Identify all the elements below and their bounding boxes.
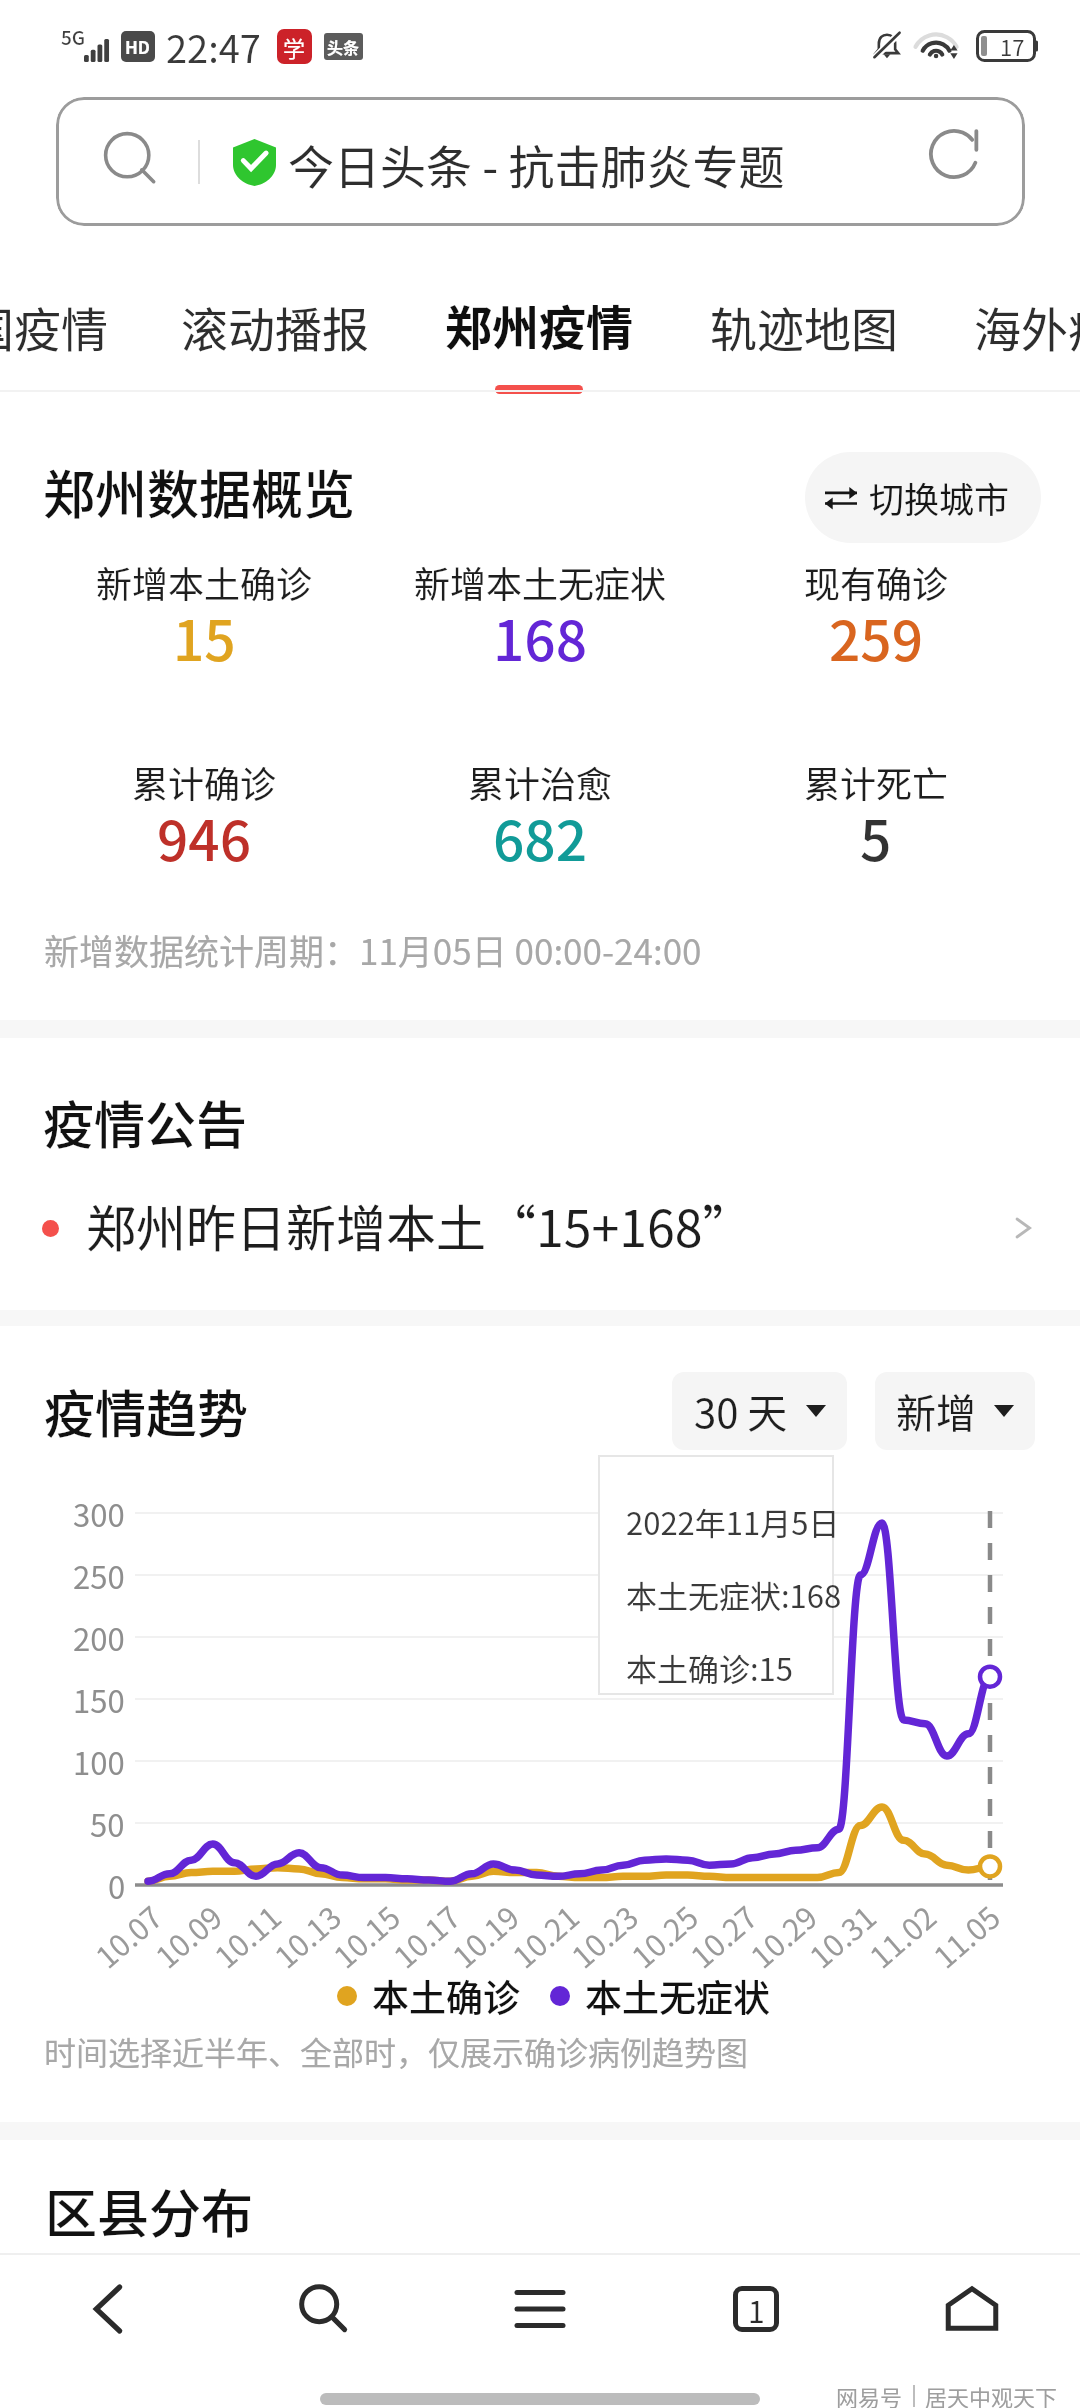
staticText: 0 (108, 1863, 126, 1908)
staticText: 22:47 (166, 19, 261, 74)
staticText: 150 (73, 1677, 125, 1722)
staticText: 累计死亡 (804, 756, 949, 808)
staticText: 新增 (896, 1382, 976, 1440)
staticText: 本土确诊 (372, 1969, 520, 2023)
staticText: 区县分布 (45, 2173, 254, 2248)
staticText: 259 (829, 597, 924, 677)
staticText: 郑州昨日新增本土“15+168” (86, 1189, 753, 1261)
button[interactable]: Home (864, 2255, 1080, 2363)
button[interactable]: 郑州昨日新增本土“15+168” (0, 1180, 1080, 1276)
staticText: 10.25 (621, 1895, 706, 1976)
staticText: 5 (860, 797, 892, 877)
staticText: 10.21 (502, 1895, 587, 1976)
staticText: 今日头条 - 抗击肺炎专题 (288, 131, 785, 198)
button[interactable]: 30 天 (672, 1372, 847, 1450)
staticText: 时间选择近半年、全部时，仅展示确诊病例趋势图 (44, 2028, 749, 2074)
staticText: 10.17 (383, 1895, 468, 1976)
staticText: 300 (73, 1491, 125, 1536)
staticText: 11.05 (923, 1895, 1008, 1976)
staticText: 30 天 (694, 1382, 788, 1440)
staticText: 头条 (327, 35, 360, 58)
staticText: 10.27 (680, 1895, 765, 1976)
staticText: 切换城市 (869, 472, 1010, 523)
staticText: 5G (61, 23, 86, 51)
button[interactable]: Menu (432, 2255, 648, 2363)
staticText: 10.19 (442, 1895, 527, 1976)
button[interactable]: 轨迹地图 (710, 292, 898, 360)
button[interactable]: 中国疫情 (0, 292, 108, 360)
staticText: 10.13 (264, 1895, 349, 1976)
staticText: 疫情公告 (43, 1085, 248, 1159)
staticText: 17 (1000, 30, 1025, 62)
staticText: 累计治愈 (468, 756, 613, 808)
staticText: 本土无症状 (585, 1969, 770, 2023)
staticText: 15 (173, 597, 236, 677)
staticText: 10.09 (145, 1895, 230, 1976)
button[interactable]: 郑州疫情 (445, 290, 633, 394)
button[interactable]: Back (0, 2255, 216, 2363)
button[interactable]: 滚动播报 (181, 292, 369, 360)
staticText: 250 (73, 1553, 125, 1598)
staticText: 10.07 (85, 1895, 170, 1976)
staticText: 网易号 (836, 2380, 903, 2408)
staticText: 200 (73, 1615, 125, 1660)
staticText: 10.11 (204, 1895, 289, 1976)
staticText: 新增本土确诊 (96, 556, 313, 608)
staticText: 50 (90, 1801, 125, 1846)
staticText: 682 (493, 797, 588, 877)
staticText: 2022年11月5日 (626, 1499, 840, 1544)
staticText: 10.15 (323, 1895, 408, 1976)
staticText: 郑州数据概览 (43, 454, 356, 529)
staticText: 本土无症状:168 (626, 1572, 842, 1617)
staticText: 郑州疫情 (445, 290, 633, 358)
staticText: 新增数据统计周期：11月05日 00:00-24:00 (44, 924, 702, 975)
other: Refresh (928, 128, 980, 180)
staticText: HD (125, 34, 151, 59)
staticText: 疫情趋势 (44, 1374, 249, 1448)
staticText: 11.02 (859, 1895, 944, 1976)
staticText: 168 (493, 597, 588, 677)
other: Search (104, 132, 158, 186)
button[interactable]: 新增 (875, 1372, 1035, 1450)
button[interactable]: Tabs (648, 2255, 864, 2363)
staticText: 新增本土无症状 (414, 556, 667, 608)
staticText: 10.23 (561, 1895, 646, 1976)
staticText: 946 (157, 797, 252, 877)
staticText: 本土确诊:15 (626, 1645, 794, 1690)
staticText: 100 (73, 1739, 125, 1784)
button[interactable]: 切换城市 (805, 452, 1041, 543)
button[interactable]: Search (216, 2255, 432, 2363)
staticText: 现有确诊 (804, 556, 949, 608)
button[interactable]: 海外疫情 (974, 292, 1080, 360)
staticText: 累计确诊 (132, 756, 277, 808)
button[interactable] (56, 97, 1025, 226)
staticText: 居天中观天下 (925, 2380, 1058, 2408)
staticText: 10.31 (799, 1895, 884, 1976)
staticText: 学 (283, 31, 306, 63)
staticText: 10.29 (740, 1895, 825, 1976)
staticText: 1 (748, 2288, 765, 2331)
